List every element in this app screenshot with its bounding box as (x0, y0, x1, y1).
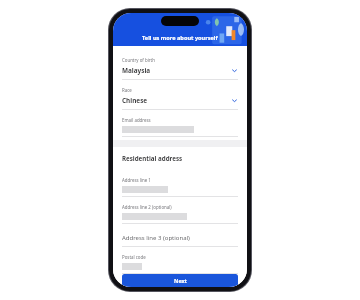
button[interactable]: Race (113, 80, 247, 110)
staticText: Country of birth (122, 57, 155, 63)
staticText: Address line 1 (122, 177, 151, 183)
button[interactable]: Address line 3 (optional) (113, 230, 247, 247)
other: Open dropdown (231, 97, 238, 104)
staticText: Tell us more about yourself (142, 34, 218, 42)
other: Open dropdown (231, 67, 238, 74)
button[interactable]: Email address (113, 110, 247, 137)
staticText: Chinese (122, 96, 231, 105)
button[interactable]: Address line 1 (113, 170, 247, 197)
button[interactable]: Address line 2 (optional) (113, 197, 247, 224)
staticText: Postal code (122, 254, 146, 260)
button[interactable]: Country of birth (113, 50, 247, 80)
button[interactable]: Next (122, 274, 238, 287)
button[interactable]: Postal code (113, 247, 247, 274)
staticText: Malaysia (122, 66, 231, 75)
staticText: Next (174, 277, 187, 284)
staticText: Residential address (122, 154, 183, 162)
staticText: Address line 2 (optional) (122, 204, 172, 210)
staticText: Address line 3 (optional) (122, 234, 190, 242)
staticText: Email address (122, 117, 151, 123)
staticText: Race (122, 87, 132, 93)
